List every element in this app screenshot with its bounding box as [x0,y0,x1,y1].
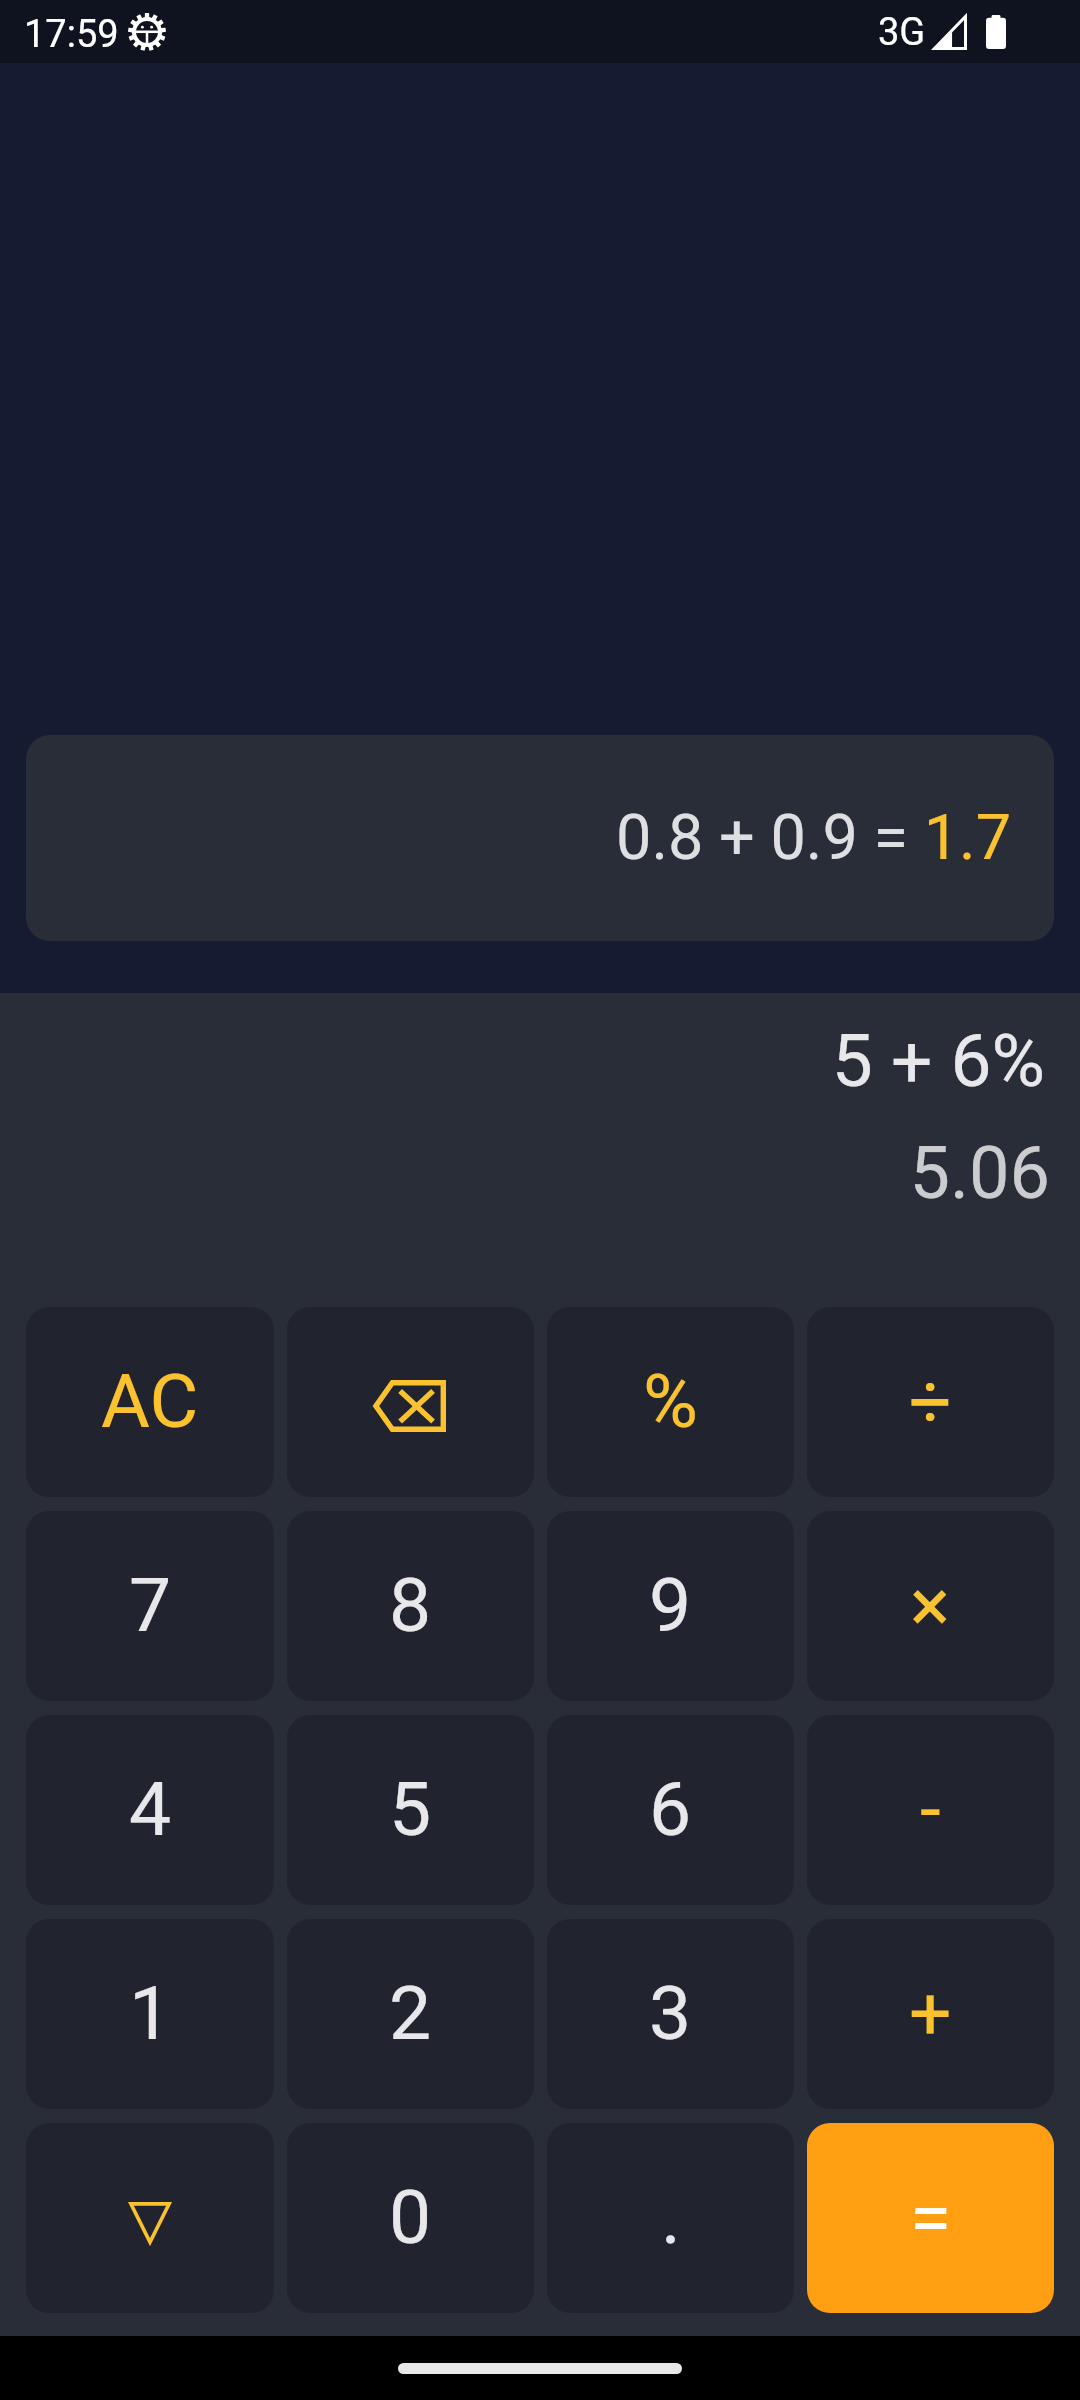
staticText: 3 [649,1969,692,2057]
staticText: 0.8 + 0.9 = 1.7 [616,801,1012,875]
staticText: 5.06 [909,1131,1050,1215]
button[interactable]: 4 [26,1715,274,1905]
staticText: 4 [129,1765,172,1853]
button[interactable]: × [807,1511,1054,1701]
button[interactable]: 1 [26,1919,274,2109]
button[interactable]: = [807,2123,1054,2313]
button[interactable]: 3 [547,1919,794,2109]
button[interactable]: - [807,1715,1054,1905]
staticText: - [920,1765,941,1853]
staticText: 8 [389,1561,432,1649]
staticText: 5 [389,1765,432,1853]
staticText: 5 + 6% [831,1018,1045,1104]
button[interactable]: 2 [287,1919,534,2109]
staticText: 1 [129,1969,172,2057]
staticText: ÷ [909,1357,952,1445]
button[interactable]: 8 [287,1511,534,1701]
staticText: × [910,1561,951,1649]
staticText: = [910,2173,952,2261]
button[interactable]: % [547,1307,794,1497]
staticText: 17:59 [24,12,119,57]
button[interactable]: 0.8 + 0.9 = 1.7 [26,735,1054,941]
staticText: + [909,1969,952,2057]
button[interactable]: Collapse [26,2123,274,2313]
button[interactable]: Backspace [287,1307,534,1497]
staticText: 2 [389,1969,432,2057]
button[interactable]: 9 [547,1511,794,1701]
staticText: 0 [389,2173,432,2261]
staticText: AC [101,1357,199,1445]
staticText: % [643,1357,698,1445]
button[interactable]: 5 [287,1715,534,1905]
button[interactable]: 6 [547,1715,794,1905]
staticText: 3G [878,10,926,55]
button[interactable]: ÷ [807,1307,1054,1497]
button[interactable]: AC [26,1307,274,1497]
button[interactable]: + [807,1919,1054,2109]
button[interactable]: 0 [287,2123,534,2313]
button[interactable]: . [547,2123,794,2313]
staticText: 9 [649,1561,692,1649]
button[interactable]: 7 [26,1511,274,1701]
staticText: 7 [129,1561,172,1649]
staticText: 6 [649,1765,692,1853]
staticText: . [661,2173,681,2261]
